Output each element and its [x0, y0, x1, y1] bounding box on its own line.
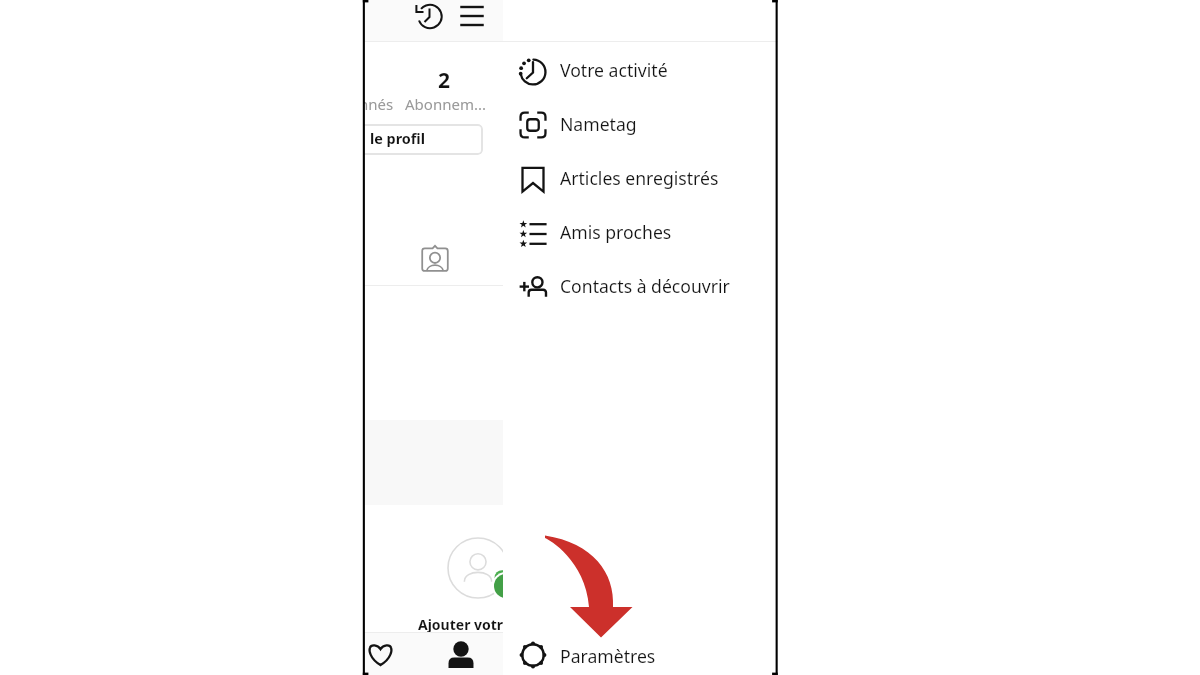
button[interactable]: Paramètres: [503, 628, 778, 675]
button[interactable]: Articles enregistrés: [503, 153, 778, 207]
staticText: Articles enregistrés: [560, 166, 719, 190]
button[interactable]: Likes: [368, 643, 393, 666]
staticText: Amis proches: [560, 220, 672, 244]
staticText: 2: [438, 66, 451, 95]
button[interactable]: Activity history: [413, 0, 447, 33]
staticText: Ajouter votre photo: [418, 615, 503, 634]
staticText: Abonnem...: [405, 94, 486, 114]
button[interactable]: Contacts à découvrir: [503, 261, 778, 315]
staticText: le profil: [370, 129, 426, 149]
button[interactable]: Votre activité: [503, 45, 778, 99]
button[interactable]: Profile: [448, 642, 474, 668]
button[interactable]: Menu: [455, 0, 489, 33]
staticText: Votre activité: [560, 58, 668, 82]
staticText: Paramètres: [560, 644, 656, 668]
button[interactable]: Amis proches: [503, 207, 778, 261]
staticText: Contacts à découvrir: [560, 274, 730, 298]
button[interactable]: le profil: [363, 124, 483, 155]
staticText: Nametag: [560, 112, 637, 136]
staticText: Abonnés: [363, 94, 394, 114]
button[interactable]: Nametag: [503, 99, 778, 153]
